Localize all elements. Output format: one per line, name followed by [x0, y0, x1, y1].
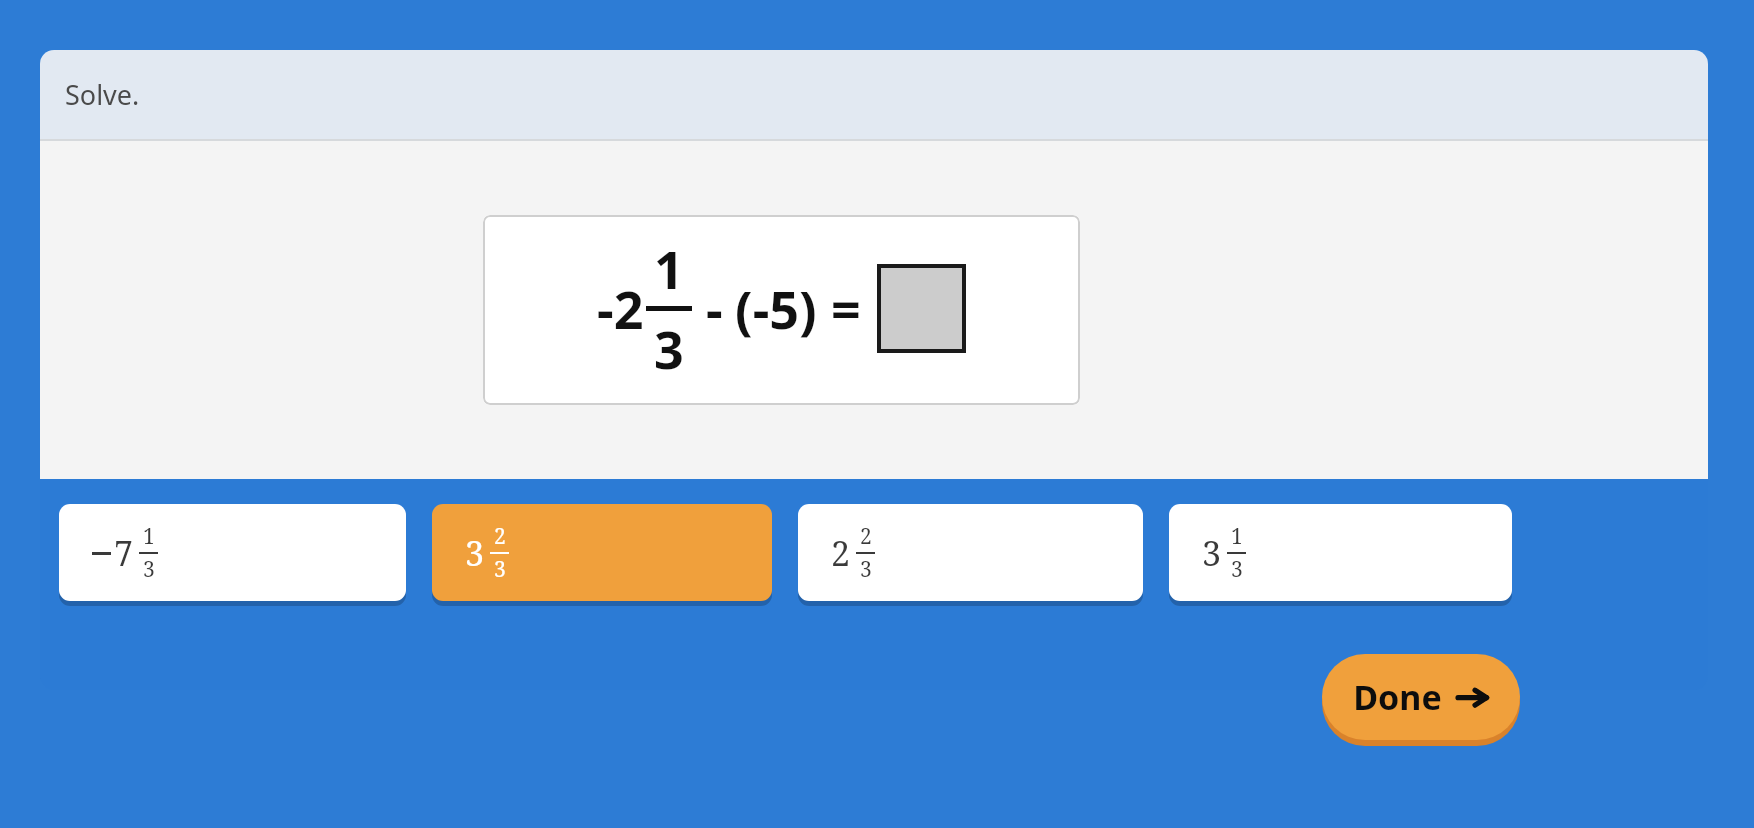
staticText: 7 [114, 530, 134, 576]
staticText: 1 [143, 522, 155, 551]
staticText: = [831, 273, 861, 344]
staticText: - [706, 273, 723, 344]
staticText: -2 [597, 273, 644, 344]
staticText: Solve. [65, 76, 140, 113]
staticText: 1 [1231, 522, 1243, 551]
button[interactable]: 3 [1169, 504, 1512, 601]
staticText: 3 [143, 555, 155, 584]
button[interactable]: Done [1322, 654, 1520, 740]
staticText: Done [1353, 674, 1442, 720]
staticText: 2 [494, 522, 506, 551]
staticText: 3 [860, 555, 872, 584]
button[interactable]: 7 [59, 504, 406, 601]
staticText: 3 [494, 555, 506, 584]
button[interactable]: 3 [432, 504, 772, 601]
staticText: 3 [1202, 530, 1222, 576]
staticText: 3 [1231, 555, 1243, 584]
staticText: 1 [654, 233, 684, 304]
staticText: (-5) [735, 273, 817, 344]
button[interactable]: 2 [798, 504, 1143, 601]
staticText: 3 [654, 313, 684, 384]
staticText: 2 [860, 522, 872, 551]
staticText: 3 [465, 530, 485, 576]
staticText: 2 [831, 530, 851, 576]
button[interactable]: Answer blank [877, 264, 966, 353]
